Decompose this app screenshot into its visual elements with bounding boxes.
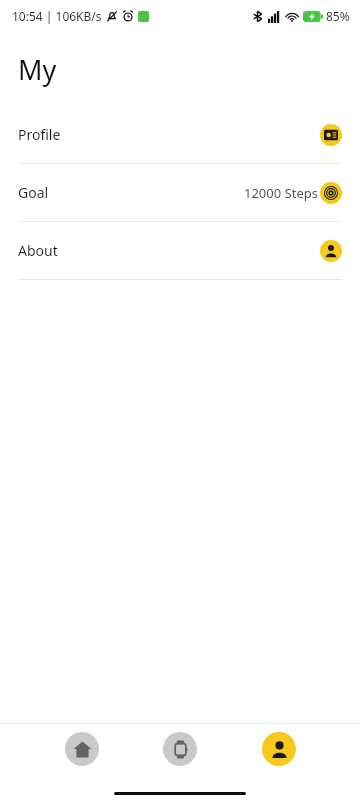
staticText: Goal	[18, 183, 49, 202]
button[interactable]: Home	[65, 732, 99, 766]
staticText: 10:54 | 106KB/s	[12, 8, 102, 24]
button[interactable]: Goal	[0, 164, 360, 221]
button[interactable]: About	[0, 222, 360, 279]
button[interactable]: Watch	[163, 732, 197, 766]
staticText: Profile	[18, 125, 61, 144]
staticText: 12000 Steps	[244, 184, 318, 202]
button[interactable]: Profile	[262, 732, 296, 766]
staticText: About	[18, 241, 58, 260]
staticText: 85%	[326, 8, 350, 24]
button[interactable]: Profile	[0, 106, 360, 163]
staticText: My	[18, 51, 57, 88]
